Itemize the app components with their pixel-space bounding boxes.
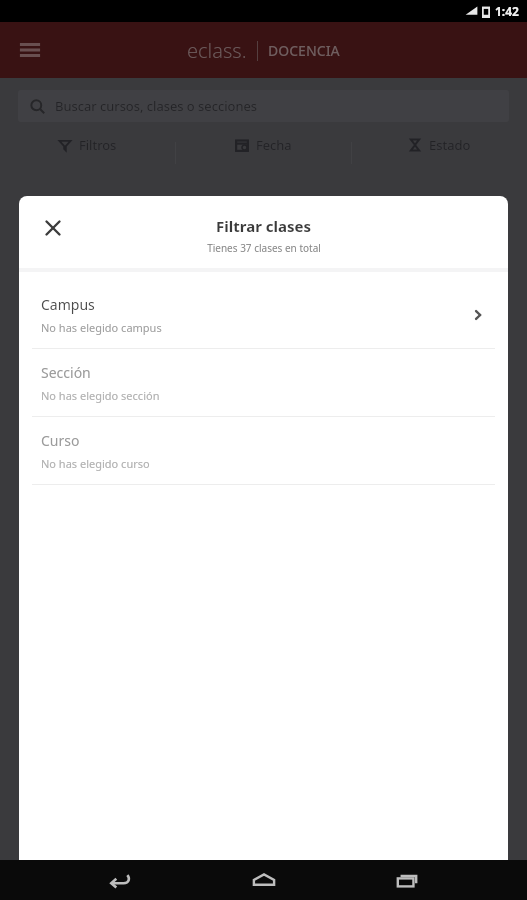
staticText: eclass. — [187, 37, 247, 64]
button[interactable]: Estado — [352, 136, 527, 154]
staticText: Fecha — [256, 136, 292, 154]
button[interactable]: Home — [241, 860, 287, 900]
staticText: Filtrar clases — [216, 216, 311, 236]
button[interactable]: Buscar cursos, clases o secciones — [18, 90, 509, 122]
staticText: Estado — [429, 136, 471, 154]
staticText: No has elegido campus — [41, 320, 162, 335]
button[interactable]: Menu — [12, 30, 48, 70]
button[interactable]: Sección — [32, 349, 495, 416]
staticText: Tienes 37 clases en total — [207, 241, 321, 255]
staticText: Filtros — [79, 136, 117, 154]
staticText: Buscar cursos, clases o secciones — [55, 97, 257, 115]
staticText: No has elegido sección — [41, 388, 160, 403]
staticText: DOCENCIA — [268, 41, 340, 60]
button[interactable]: Recent apps — [384, 860, 430, 900]
button[interactable]: Fecha — [176, 136, 351, 154]
button[interactable]: Campus — [32, 281, 495, 348]
staticText: Sección — [41, 363, 91, 382]
button[interactable]: Filtros — [0, 136, 175, 154]
staticText: 1:42 — [495, 3, 519, 19]
staticText: Curso — [41, 431, 80, 450]
button[interactable]: Curso — [32, 417, 495, 484]
staticText: Campus — [41, 295, 95, 314]
staticText: No has elegido curso — [41, 456, 150, 471]
button[interactable]: Cerrar — [35, 210, 71, 246]
button[interactable]: Back — [97, 860, 143, 900]
